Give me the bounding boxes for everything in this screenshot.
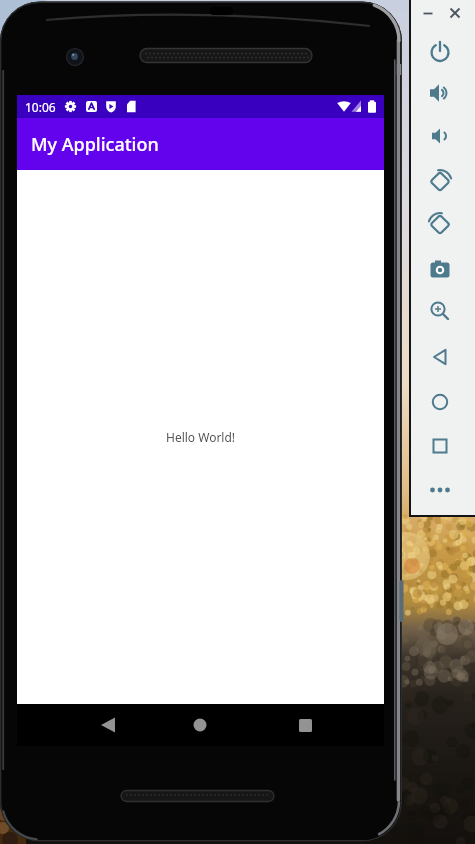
button[interactable] bbox=[422, 472, 458, 508]
button[interactable] bbox=[88, 705, 128, 745]
staticText: Hello World! bbox=[166, 429, 236, 445]
button[interactable] bbox=[180, 705, 220, 745]
button[interactable] bbox=[422, 205, 458, 241]
button[interactable] bbox=[422, 293, 458, 329]
button[interactable] bbox=[422, 118, 458, 154]
staticText: My Application bbox=[31, 132, 159, 157]
button[interactable] bbox=[422, 252, 458, 288]
button[interactable] bbox=[422, 34, 458, 70]
button[interactable] bbox=[422, 384, 458, 420]
button[interactable] bbox=[419, 4, 437, 22]
button[interactable] bbox=[422, 162, 458, 198]
button[interactable] bbox=[422, 339, 458, 375]
button[interactable] bbox=[422, 75, 458, 111]
button[interactable] bbox=[446, 4, 464, 22]
button[interactable] bbox=[285, 705, 325, 745]
button[interactable] bbox=[422, 428, 458, 464]
staticText: 10:06 bbox=[25, 99, 56, 115]
